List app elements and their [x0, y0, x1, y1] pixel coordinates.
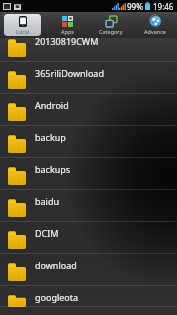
staticText: DCIM [35, 227, 59, 239]
staticText: backups [35, 163, 71, 175]
staticText: Local [16, 28, 30, 35]
button[interactable]: Apps [49, 14, 85, 36]
button[interactable]: Local [4, 14, 41, 36]
button[interactable]: 20130819CWM [0, 30, 177, 62]
button[interactable]: googleota [0, 286, 177, 307]
button[interactable]: 365riliDownload [0, 62, 177, 94]
staticText: Advance [144, 28, 166, 35]
button[interactable]: baidu [0, 190, 177, 222]
button[interactable]: DCIM [0, 222, 177, 254]
staticText: download [35, 259, 77, 271]
staticText: Android [35, 99, 69, 111]
staticText: Category [99, 28, 123, 35]
button[interactable]: Advance [137, 14, 173, 36]
staticText: 365riliDownload [35, 67, 104, 79]
staticText: backup [35, 131, 66, 143]
button[interactable]: download [0, 254, 177, 286]
staticText: Apps [61, 28, 74, 35]
staticText: baidu [35, 195, 60, 207]
staticText: googleota [35, 291, 79, 303]
staticText: 19:46 [153, 1, 174, 12]
staticText: 99% [127, 1, 143, 12]
button[interactable]: Category [93, 14, 129, 36]
button[interactable]: backup [0, 126, 177, 158]
staticText: 20130819CWM [35, 35, 99, 47]
button[interactable]: Android [0, 94, 177, 126]
button[interactable]: backups [0, 158, 177, 190]
